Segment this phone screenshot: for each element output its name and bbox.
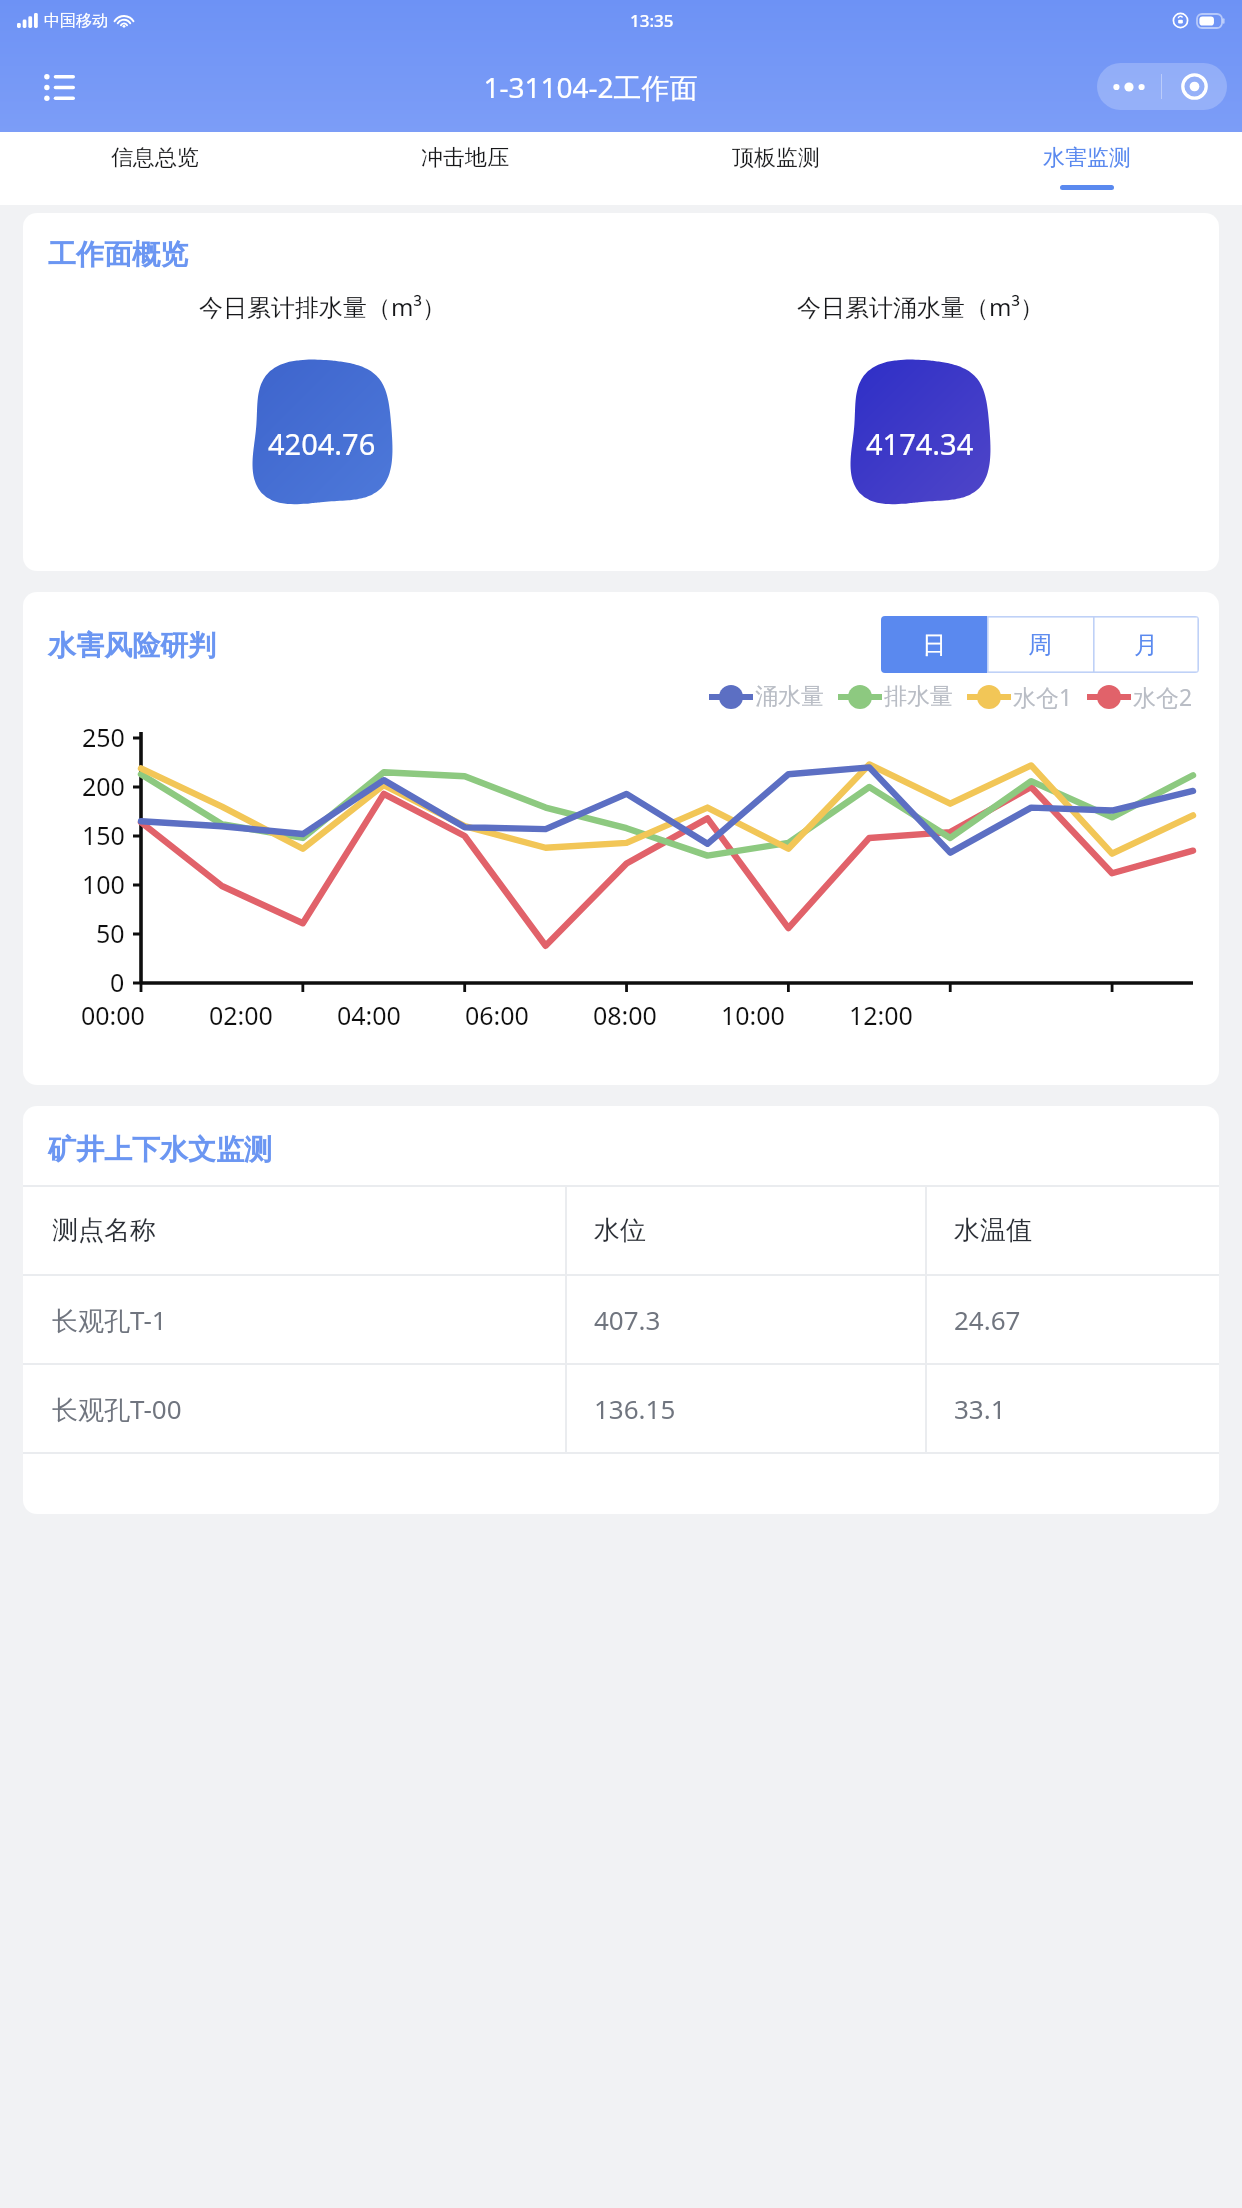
staticText: 0	[110, 965, 125, 999]
button[interactable]: 信息总览	[0, 132, 310, 205]
staticText: 冲击地压	[421, 144, 509, 172]
button[interactable]: Menu	[34, 62, 84, 112]
staticText: 水仓2	[1133, 681, 1193, 712]
staticText: 矿井上下水文监测	[48, 1132, 272, 1167]
staticText: 08:00	[593, 998, 657, 1032]
staticText: 涌水量	[755, 682, 824, 711]
button[interactable]: 日	[881, 616, 987, 673]
staticText: 排水量	[884, 682, 953, 711]
button[interactable]: 顶板监测	[620, 132, 931, 205]
staticText: 测点名称	[52, 1214, 156, 1247]
staticText: 水仓1	[1013, 681, 1073, 712]
button[interactable]: More options	[1097, 63, 1227, 110]
staticText: 200	[82, 769, 125, 803]
staticText: 100	[82, 867, 125, 901]
staticText: 12:00	[849, 998, 913, 1032]
staticText: 150	[82, 818, 125, 852]
staticText: 33.1	[954, 1391, 1006, 1426]
staticText: 06:00	[465, 998, 529, 1032]
staticText: 水害监测	[1043, 144, 1131, 172]
staticText: 4174.34	[866, 424, 974, 463]
staticText: 工作面概览	[48, 237, 188, 272]
staticText: 13:35	[630, 9, 674, 32]
staticText: 4204.76	[268, 424, 376, 463]
staticText: 407.3	[594, 1302, 661, 1337]
button[interactable]: 冲击地压	[310, 132, 620, 205]
staticText: 信息总览	[111, 144, 199, 172]
staticText: 水位	[594, 1214, 646, 1247]
staticText: 50	[96, 916, 125, 950]
staticText: 136.15	[594, 1391, 676, 1426]
staticText: 24.67	[954, 1302, 1021, 1337]
button[interactable]: 周	[987, 616, 1093, 673]
staticText: 00:00	[81, 998, 145, 1032]
staticText: 长观孔T-00	[52, 1391, 182, 1427]
staticText: 04:00	[337, 998, 401, 1032]
staticText: 10:00	[721, 998, 785, 1032]
button[interactable]: 测点名称	[23, 1187, 1219, 1274]
staticText: 水害风险研判	[48, 628, 216, 663]
staticText: 今日累计排水量（m³）	[199, 290, 446, 323]
button[interactable]: 月	[1093, 616, 1199, 673]
staticText: 02:00	[209, 998, 273, 1032]
staticText: 日	[922, 630, 946, 660]
button[interactable]: 水害监测	[931, 132, 1242, 205]
staticText: 1-31104-2工作面	[483, 68, 698, 106]
staticText: 今日累计涌水量（m³）	[797, 290, 1044, 323]
staticText: 水温值	[954, 1214, 1032, 1247]
button[interactable]: 长观孔T-00	[23, 1365, 1219, 1452]
staticText: 250	[82, 720, 125, 754]
staticText: 中国移动	[44, 11, 108, 31]
staticText: 顶板监测	[732, 144, 820, 172]
button[interactable]: 长观孔T-1	[23, 1276, 1219, 1363]
staticText: 长观孔T-1	[52, 1302, 167, 1338]
staticText: 周	[1028, 630, 1052, 660]
staticText: 月	[1134, 630, 1158, 660]
